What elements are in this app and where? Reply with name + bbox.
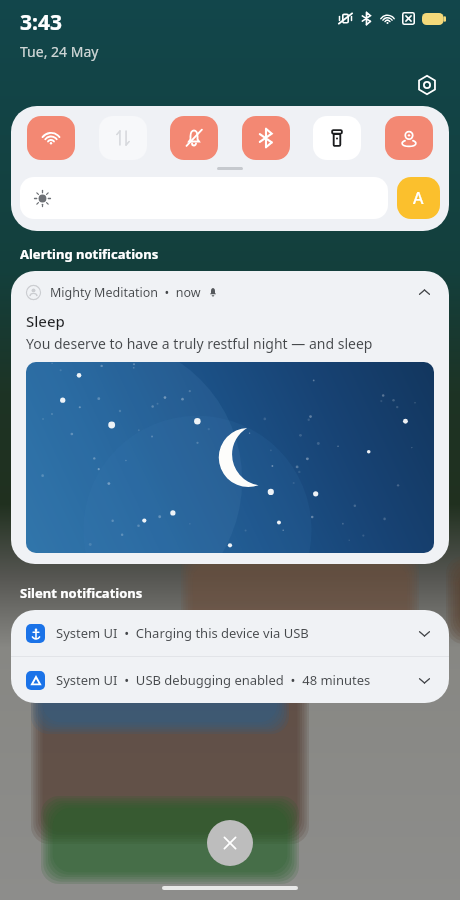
staticText: Tue, 24 May xyxy=(20,42,99,61)
button[interactable]: Do not disturb xyxy=(170,116,218,160)
button[interactable]: Flashlight xyxy=(313,116,361,160)
button[interactable]: A xyxy=(397,177,440,219)
staticText: You deserve to have a truly restful nigh… xyxy=(26,334,434,353)
staticText: Alerting notifications xyxy=(20,245,159,263)
button[interactable]: Location xyxy=(385,116,433,160)
button[interactable]: Collapse xyxy=(414,282,434,302)
button[interactable]: Mobile data xyxy=(99,116,147,160)
button[interactable]: Close xyxy=(207,820,253,866)
button[interactable] xyxy=(20,177,388,219)
staticText: System UI • Charging this device via USB xyxy=(56,624,309,642)
button[interactable]: Mighty Meditation • now xyxy=(11,271,449,564)
staticText: A xyxy=(413,187,424,209)
staticText: Mighty Meditation • now xyxy=(50,284,201,301)
button[interactable]: Wi-Fi xyxy=(27,116,75,160)
staticText: System UI • USB debugging enabled • 48 m… xyxy=(56,671,371,689)
button[interactable]: System UI • Charging this device via USB xyxy=(11,610,449,656)
staticText: Silent notifications xyxy=(20,584,143,602)
button[interactable]: Expand xyxy=(414,623,434,643)
staticText: 3:43 xyxy=(20,8,62,37)
staticText: Sleep xyxy=(26,311,65,331)
button[interactable]: Expand xyxy=(414,670,434,690)
button[interactable]: Settings xyxy=(414,72,440,98)
button[interactable]: System UI • USB debugging enabled • 48 m… xyxy=(11,657,449,703)
button[interactable]: Bluetooth xyxy=(242,116,290,160)
